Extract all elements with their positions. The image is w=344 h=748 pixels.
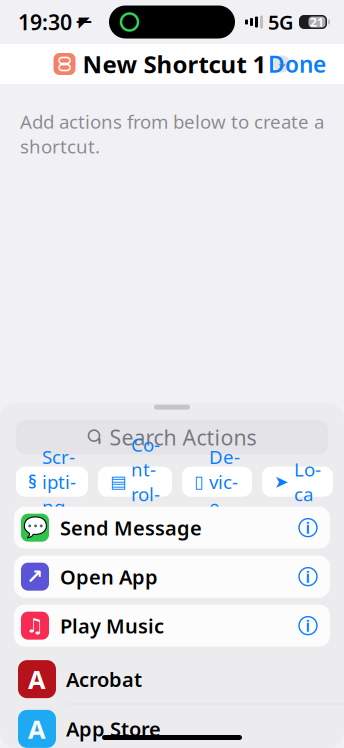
staticText: Send Message	[60, 514, 202, 541]
button[interactable]: A	[0, 704, 344, 748]
staticText: i	[305, 517, 310, 538]
staticText: A	[28, 712, 46, 746]
button[interactable]: ↗	[14, 556, 330, 598]
staticText: 💬	[22, 516, 47, 539]
button[interactable]: Search Actions	[16, 420, 328, 455]
staticText: Done	[268, 49, 326, 79]
staticText: Device	[209, 444, 240, 519]
staticText: App Store	[66, 716, 161, 742]
staticText: Open App	[60, 563, 158, 590]
staticText: Controls	[131, 432, 160, 531]
button[interactable]: ➤	[262, 467, 333, 497]
staticText: ▯	[194, 472, 204, 491]
button[interactable]: §	[16, 467, 88, 497]
staticText: ➤	[274, 472, 289, 491]
staticText: i	[305, 566, 310, 587]
staticText: Acrobat	[66, 666, 142, 692]
button[interactable]: A	[0, 655, 344, 704]
button[interactable]: ▤	[98, 467, 172, 497]
staticText: ↗	[26, 565, 43, 588]
button[interactable]: ♫	[14, 605, 330, 647]
staticText: ♫	[26, 614, 44, 637]
button[interactable]: ▯	[182, 467, 252, 497]
staticText: Search Actions	[109, 423, 256, 451]
staticText: §	[28, 470, 37, 493]
staticText: ▤	[110, 472, 126, 491]
button[interactable]: New Shortcut 1	[47, 43, 296, 85]
staticText: Loca	[294, 457, 321, 506]
staticText: ⌄	[276, 54, 288, 71]
staticText: New Shortcut 1	[82, 48, 266, 80]
staticText: Add actions from below to create a short…	[20, 109, 324, 159]
button[interactable]: Done	[256, 43, 338, 85]
staticText: 19:30	[18, 8, 72, 36]
staticText: i	[305, 615, 310, 636]
staticText: A	[28, 662, 46, 696]
button[interactable]: 💬	[14, 507, 330, 549]
staticText: 5G	[268, 9, 294, 35]
staticText: Play Music	[60, 612, 164, 639]
staticText: ◤	[78, 14, 89, 30]
staticText: Scripting	[42, 444, 76, 519]
staticText: 21	[310, 14, 324, 30]
